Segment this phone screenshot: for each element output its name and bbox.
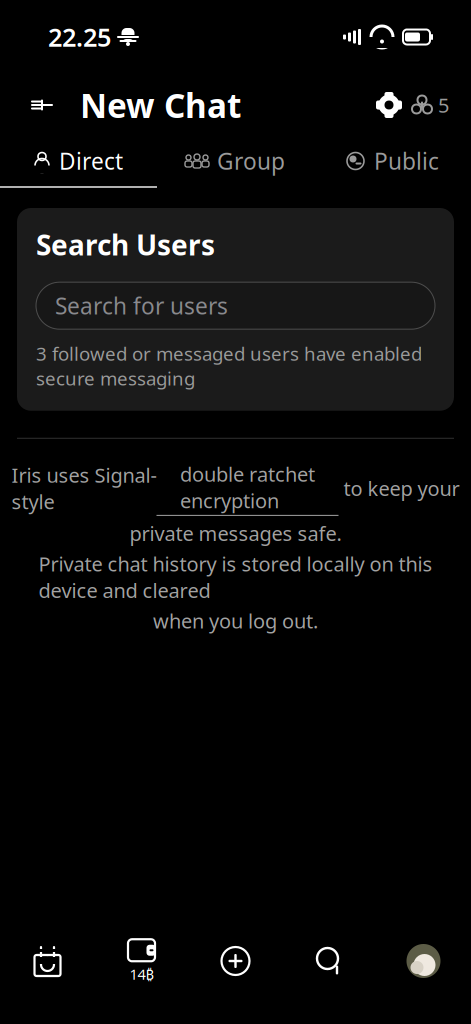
staticText: 5 xyxy=(438,92,449,118)
staticText: Private chat history is stored locally o… xyxy=(38,550,432,603)
button[interactable]: Profile xyxy=(376,930,470,992)
staticText: to keep your xyxy=(338,475,459,502)
button[interactable]: Group xyxy=(157,136,314,186)
staticText: private messages safe. xyxy=(129,520,341,546)
staticText: 14₿ xyxy=(129,964,153,984)
staticText: 3 followed or messaged users have enable… xyxy=(36,341,422,391)
staticText: Search Users xyxy=(36,226,215,263)
button[interactable]: Public xyxy=(314,136,471,186)
staticText: Direct xyxy=(59,146,123,176)
staticText: double ratchet encryption xyxy=(180,461,315,514)
staticText: Search for users xyxy=(55,291,228,321)
button[interactable]: Back xyxy=(22,85,62,125)
button[interactable]: New post xyxy=(188,930,282,992)
staticText: 22.25 xyxy=(48,20,111,54)
staticText: Iris uses Signal-style xyxy=(11,462,156,515)
button[interactable]: Search for users xyxy=(17,263,454,329)
button[interactable]: Relays: 5 connected xyxy=(405,89,449,121)
button[interactable]: Home xyxy=(0,930,94,992)
staticText: Group xyxy=(217,146,285,176)
button[interactable]: Settings xyxy=(373,89,405,121)
button[interactable]: Wallet, 14 sats xyxy=(94,930,188,992)
button[interactable]: Direct xyxy=(0,136,157,186)
staticText: when you log out. xyxy=(153,608,318,634)
staticText: New Chat xyxy=(80,83,241,127)
staticText: Public xyxy=(374,146,439,176)
button[interactable]: Search xyxy=(282,930,376,992)
